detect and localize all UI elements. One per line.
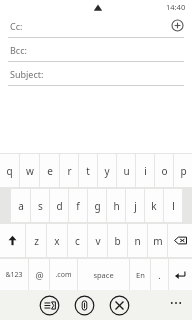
button[interactable]: space <box>78 259 129 290</box>
staticText: h <box>113 199 120 213</box>
staticText: 14:40 <box>166 2 186 12</box>
button[interactable]: Bcc: <box>0 38 192 62</box>
button[interactable]: f <box>69 189 87 222</box>
button[interactable]: More options <box>167 296 185 314</box>
staticText: f <box>76 199 80 213</box>
button[interactable]: q <box>0 154 19 187</box>
staticText: g <box>94 199 101 213</box>
button[interactable]: &123 <box>0 259 28 290</box>
button[interactable]: h <box>107 189 125 222</box>
button[interactable]: Cc: <box>0 14 192 38</box>
staticText: d <box>56 199 63 213</box>
staticText: y <box>104 164 110 178</box>
button[interactable]: t <box>79 154 97 187</box>
staticText: .com <box>55 270 72 280</box>
button[interactable]: z <box>26 224 46 257</box>
button[interactable]: i <box>136 154 154 187</box>
staticText: w <box>26 164 34 178</box>
button[interactable]: Send <box>39 295 60 316</box>
button[interactable]: Backspace <box>168 224 192 257</box>
button[interactable]: Attach <box>74 295 95 316</box>
staticText: u <box>123 164 130 178</box>
staticText: o <box>161 164 168 178</box>
staticText: l <box>172 199 175 213</box>
staticText: e <box>47 164 53 178</box>
button[interactable]: x <box>47 224 67 257</box>
staticText: Subject: <box>10 68 44 80</box>
staticText: r <box>67 164 72 178</box>
button[interactable]: l <box>164 189 182 222</box>
button[interactable]: s <box>31 189 49 222</box>
staticText: v <box>95 234 101 248</box>
button[interactable]: d <box>50 189 68 222</box>
button[interactable]: b <box>108 224 127 257</box>
staticText: &123 <box>5 270 23 280</box>
button[interactable]: p <box>174 154 192 187</box>
staticText: q <box>6 164 13 178</box>
button[interactable]: n <box>128 224 147 257</box>
button[interactable]: Enter <box>169 259 192 290</box>
button[interactable]: @ <box>29 259 49 290</box>
staticText: space <box>93 270 114 280</box>
button[interactable]: u <box>117 154 135 187</box>
button[interactable]: y <box>98 154 116 187</box>
button[interactable]: Subject: <box>0 62 192 86</box>
staticText: . <box>158 269 161 281</box>
staticText: z <box>34 234 39 248</box>
staticText: m <box>153 234 163 248</box>
staticText: p <box>180 164 187 178</box>
button[interactable]: m <box>148 224 167 257</box>
staticText: i <box>144 164 147 178</box>
button[interactable]: r <box>60 154 78 187</box>
staticText: j <box>134 199 137 213</box>
button[interactable]: e <box>40 154 59 187</box>
staticText: s <box>38 199 43 213</box>
staticText: c <box>75 234 80 248</box>
button[interactable]: g <box>88 189 106 222</box>
button[interactable]: v <box>88 224 107 257</box>
button[interactable]: Add recipient <box>171 19 184 32</box>
staticText: Bcc: <box>10 44 27 56</box>
button[interactable]: Close <box>109 295 130 316</box>
staticText: k <box>151 199 157 213</box>
button[interactable]: j <box>126 189 144 222</box>
button[interactable]: Shift <box>0 224 25 257</box>
staticText: b <box>114 234 121 248</box>
button[interactable]: a <box>11 189 30 222</box>
button[interactable]: En <box>130 259 150 290</box>
staticText: @ <box>35 269 44 281</box>
button[interactable]: . <box>151 259 168 290</box>
staticText: a <box>18 199 24 213</box>
staticText: t <box>86 164 90 178</box>
button[interactable]: o <box>155 154 173 187</box>
staticText: En <box>136 270 145 280</box>
button[interactable]: .com <box>50 259 77 290</box>
staticText: Cc: <box>10 20 23 32</box>
staticText: x <box>54 234 60 248</box>
button[interactable]: w <box>20 154 39 187</box>
button[interactable]: k <box>145 189 163 222</box>
button[interactable]: c <box>68 224 87 257</box>
staticText: n <box>134 234 141 248</box>
